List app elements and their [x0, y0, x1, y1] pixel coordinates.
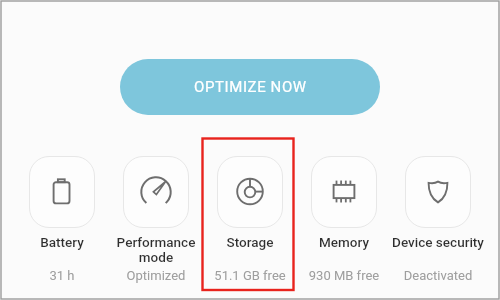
- staticText: Battery: [10, 234, 114, 250]
- staticText: Storage: [198, 234, 302, 250]
- button[interactable]: OPTIMIZE NOW: [120, 59, 380, 115]
- staticText: Device security: [386, 234, 490, 250]
- button[interactable]: [405, 156, 471, 228]
- button[interactable]: [123, 156, 189, 228]
- staticText: 31 h: [10, 268, 114, 283]
- button[interactable]: [29, 156, 95, 228]
- staticText: Performance mode: [104, 234, 208, 266]
- staticText: OPTIMIZE NOW: [194, 78, 307, 96]
- button[interactable]: [311, 156, 377, 228]
- staticText: 930 MB free: [292, 268, 396, 283]
- button[interactable]: [217, 156, 283, 228]
- staticText: 51.1 GB free: [198, 268, 302, 283]
- staticText: Optimized: [104, 268, 208, 283]
- staticText: Deactivated: [386, 268, 490, 283]
- staticText: Memory: [292, 234, 396, 250]
